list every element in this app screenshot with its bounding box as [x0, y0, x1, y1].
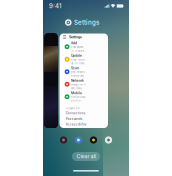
staticText: Mobile	[71, 91, 82, 95]
staticText: Easy access	[71, 46, 83, 49]
staticText: Clear all	[76, 153, 95, 159]
staticText: profile	[71, 99, 80, 102]
button[interactable]: App	[104, 136, 112, 144]
button[interactable]: Network	[59, 78, 108, 90]
button[interactable]: App	[74, 136, 82, 144]
staticText: to features	[71, 49, 84, 52]
staticText: Find nearby	[71, 71, 85, 74]
button[interactable]: Passwords	[59, 116, 108, 122]
staticText: Keep system	[71, 58, 85, 61]
staticText: devices now	[71, 74, 84, 77]
staticText: Switch data	[71, 96, 85, 99]
staticText: Scan	[71, 66, 79, 70]
staticText: Add	[71, 41, 77, 45]
button[interactable]: Mobile	[59, 90, 108, 103]
button[interactable]: Update	[59, 53, 108, 65]
staticText: Settings	[69, 35, 82, 39]
button[interactable]: Add	[59, 40, 108, 53]
staticText: Network	[71, 79, 84, 83]
staticText: 9:41	[49, 2, 62, 10]
staticText: Advanced	[66, 107, 80, 110]
staticText: Connections	[66, 111, 86, 115]
button[interactable]: Scan	[59, 65, 108, 78]
staticText: Settings	[74, 19, 99, 26]
button[interactable]: Clear all	[72, 152, 100, 161]
button[interactable]: Connections	[59, 110, 108, 116]
staticText: up to date	[71, 62, 84, 65]
staticText: Manage Wi-Fi	[71, 83, 86, 86]
staticText: Update	[71, 54, 82, 58]
staticText: and data	[71, 87, 81, 90]
button[interactable]: Accessibility	[59, 122, 108, 127]
staticText: Passwords	[66, 117, 83, 121]
button[interactable]: App	[89, 136, 97, 144]
staticText: Accessibility	[66, 123, 87, 126]
button[interactable]: App	[59, 136, 67, 144]
